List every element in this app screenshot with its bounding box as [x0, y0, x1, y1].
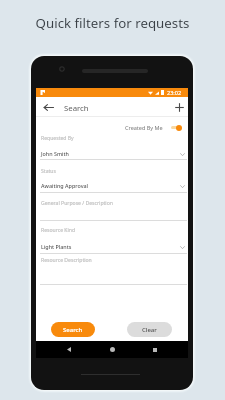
button[interactable]: Add — [169, 97, 189, 117]
staticText: Quick filters for requests — [0, 14, 225, 32]
button[interactable]: Recents — [145, 341, 165, 358]
staticText: John Smith — [41, 150, 69, 157]
button[interactable]: Created By Me — [125, 121, 182, 133]
button[interactable]: Back — [59, 341, 79, 358]
staticText: Light Plants — [41, 243, 72, 250]
staticText: Resource Description — [41, 257, 92, 264]
staticText: 23:02 — [167, 89, 182, 96]
staticText: Status — [41, 168, 56, 175]
button[interactable]: Back — [37, 97, 59, 117]
staticText: Search — [64, 103, 89, 114]
button[interactable]: Search — [51, 322, 95, 337]
button[interactable]: Awaiting Approval — [36, 182, 188, 191]
button[interactable]: Clear — [127, 322, 172, 337]
staticText: General Purpose / Description — [41, 200, 113, 207]
staticText: Awaiting Approval — [41, 182, 89, 189]
staticText: Search — [63, 326, 83, 334]
button[interactable]: John Smith — [36, 150, 188, 159]
staticText: Resource Kind — [41, 227, 76, 234]
staticText: Created By Me — [125, 124, 163, 131]
staticText: Requested By — [41, 135, 74, 142]
button[interactable]: Home — [102, 341, 122, 358]
button[interactable]: Light Plants — [36, 243, 188, 252]
staticText: Clear — [142, 326, 157, 334]
